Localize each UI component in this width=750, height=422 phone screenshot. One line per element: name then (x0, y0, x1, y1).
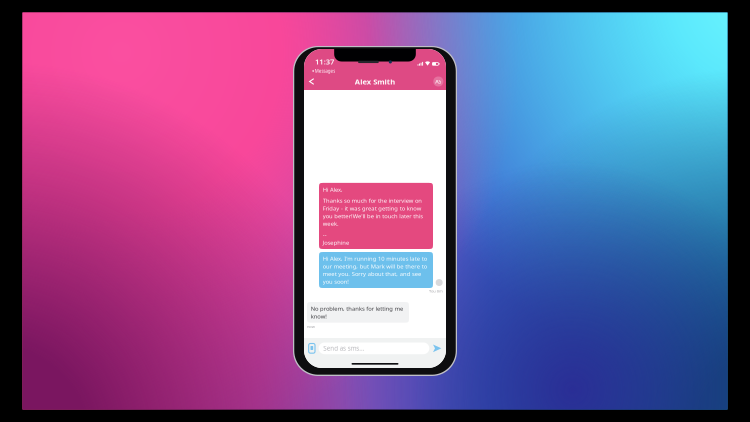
staticText: Josephine (218, 299, 298, 322)
staticText: Hi Alex, I'm running 10 minutes late to … (218, 347, 531, 422)
staticText: Thanks so much for the interview on Frid… (218, 173, 519, 265)
